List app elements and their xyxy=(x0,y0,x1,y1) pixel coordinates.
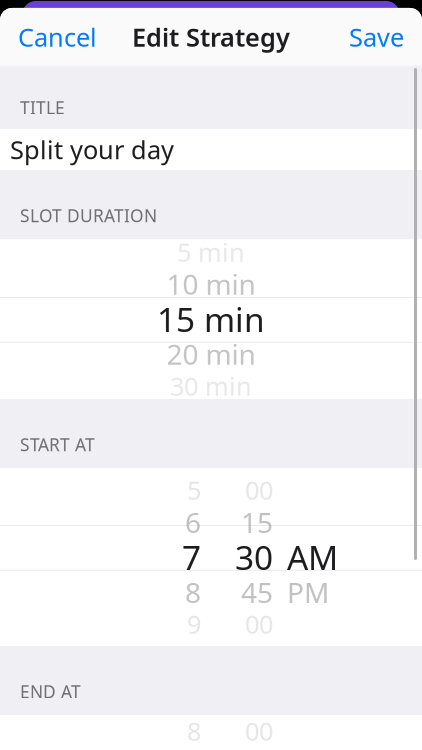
staticText: 6 xyxy=(185,503,201,541)
button[interactable]: Cancel xyxy=(0,10,115,64)
staticText: 45 xyxy=(241,573,273,611)
staticText: 00 xyxy=(245,714,273,748)
staticText: 8 xyxy=(187,714,201,748)
staticText: 15 xyxy=(241,503,273,541)
staticText: 20 min xyxy=(166,335,255,373)
staticText: 30 min xyxy=(170,369,252,403)
staticText: Cancel xyxy=(18,20,97,54)
staticText: TITLE xyxy=(20,96,65,119)
staticText: 7 xyxy=(182,535,201,579)
staticText: 00 xyxy=(245,607,273,641)
staticText: SLOT DURATION xyxy=(20,204,157,227)
staticText: 5 min xyxy=(177,235,245,269)
staticText: START AT xyxy=(20,433,95,456)
staticText: 9 xyxy=(187,607,201,641)
staticText: END AT xyxy=(20,680,81,703)
staticText: 5 xyxy=(187,473,201,507)
staticText: AM xyxy=(287,535,338,579)
staticText: Save xyxy=(349,20,404,54)
button[interactable]: Save xyxy=(331,10,422,64)
staticText: Split your day xyxy=(10,133,174,166)
staticText: 8 xyxy=(185,573,201,611)
staticText: Edit Strategy xyxy=(132,20,290,54)
staticText: PM xyxy=(287,573,329,611)
staticText: 00 xyxy=(245,473,273,507)
staticText: 15 min xyxy=(157,297,265,341)
staticText: 30 xyxy=(235,535,273,579)
staticText: 10 min xyxy=(166,265,255,303)
